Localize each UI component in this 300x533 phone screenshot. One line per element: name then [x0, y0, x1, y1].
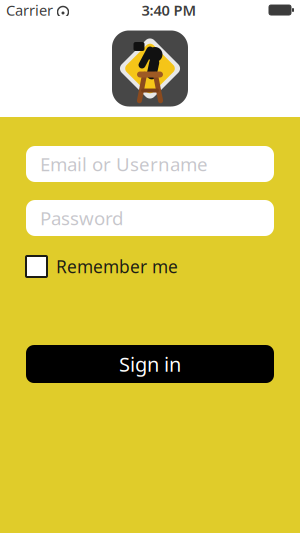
staticText: Remember me — [56, 255, 178, 278]
staticText: Email or Username — [40, 152, 208, 176]
staticText: Carrier — [6, 0, 53, 20]
staticText: Password — [40, 206, 123, 230]
button[interactable]: Email or Username — [26, 146, 274, 182]
staticText: 3:40 PM — [141, 0, 196, 20]
button[interactable]: Password — [26, 200, 274, 236]
staticText: Sign in — [119, 351, 181, 377]
button[interactable]: Sign in — [26, 345, 274, 383]
button[interactable]: Remember me — [26, 255, 178, 278]
